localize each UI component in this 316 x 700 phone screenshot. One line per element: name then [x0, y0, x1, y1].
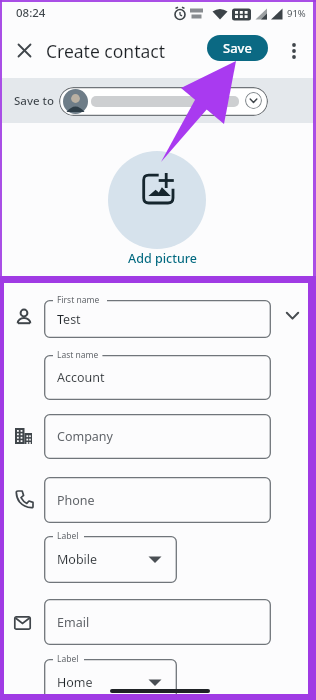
button[interactable]: Phone: [44, 477, 271, 523]
button[interactable]: Account: [44, 355, 271, 400]
staticText: 91%: [287, 7, 306, 20]
staticText: Save to: [14, 93, 54, 109]
staticText: Save: [223, 39, 252, 57]
staticText: First name: [57, 294, 100, 306]
button[interactable]: Company: [44, 414, 271, 459]
staticText: Create contact: [46, 39, 166, 63]
staticText: Email: [57, 614, 90, 631]
button[interactable]: Home: [44, 659, 177, 700]
staticText: Label: [57, 653, 79, 665]
staticText: Add picture: [128, 250, 198, 267]
button[interactable]: Save: [207, 35, 268, 61]
staticText: Mobile: [57, 551, 98, 568]
button[interactable]: Mobile: [44, 536, 177, 583]
button[interactable]: [10, 36, 38, 64]
staticText: Home: [57, 674, 93, 691]
staticText: Account: [57, 369, 105, 386]
staticText: Label: [57, 530, 79, 542]
staticText: Test: [57, 311, 81, 328]
button[interactable]: [59, 87, 268, 116]
button[interactable]: [278, 302, 306, 330]
staticText: Phone: [57, 492, 95, 509]
button[interactable]: Email: [44, 599, 271, 645]
staticText: Last name: [57, 349, 99, 361]
button[interactable]: Test: [44, 300, 271, 338]
staticText: 08:24: [16, 5, 46, 21]
staticText: Company: [57, 428, 113, 445]
